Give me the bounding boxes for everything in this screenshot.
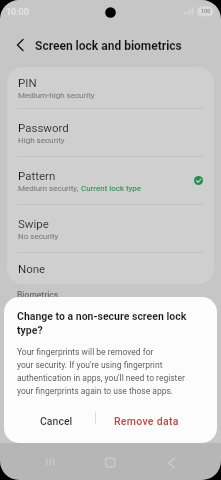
- button[interactable]: [98, 450, 122, 474]
- staticText: Medium-high security: [18, 91, 95, 100]
- staticText: Your fingerprints will be removed for yo…: [17, 347, 185, 396]
- button[interactable]: [38, 450, 62, 474]
- staticText: 10:00: [6, 7, 29, 18]
- staticText: High security: [18, 136, 65, 145]
- button[interactable]: [160, 450, 184, 474]
- staticText: No security: [18, 232, 59, 241]
- staticText: Cancel: [40, 415, 73, 427]
- staticText: Screen lock and biometrics: [35, 39, 182, 53]
- button[interactable]: Pattern: [7, 157, 214, 204]
- staticText: None: [18, 262, 46, 275]
- button[interactable]: None: [7, 253, 214, 284]
- button[interactable]: PIN: [7, 67, 214, 108]
- staticText: Swipe: [18, 217, 49, 230]
- button[interactable]: Password: [7, 109, 214, 156]
- staticText: Change to a non-secure screen lock type?: [17, 310, 187, 337]
- staticText: 100: [201, 8, 211, 14]
- staticText: PIN: [18, 76, 37, 89]
- staticText: Medium security,: [18, 184, 81, 193]
- staticText: Pattern: [18, 169, 56, 182]
- button[interactable]: Swipe: [7, 205, 214, 252]
- button[interactable]: Cancel: [20, 407, 92, 435]
- staticText: Biometrics: [17, 290, 59, 300]
- staticText: Remove data: [114, 415, 179, 427]
- button[interactable]: Remove data: [104, 407, 188, 435]
- staticText: Current lock type: [81, 184, 142, 193]
- button[interactable]: [10, 35, 30, 55]
- staticText: Password: [18, 121, 69, 134]
